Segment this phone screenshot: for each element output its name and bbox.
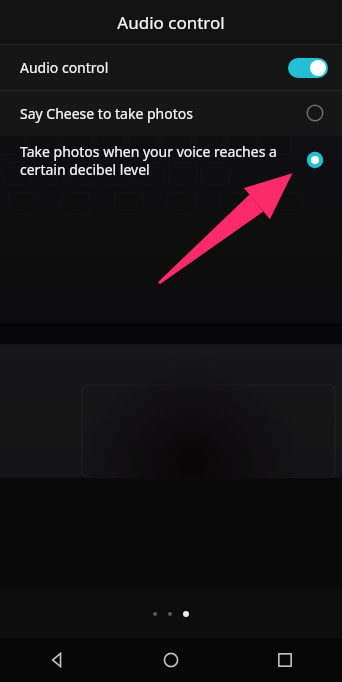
staticText: Take photos when your voice reaches a ce… bbox=[20, 142, 288, 179]
button[interactable]: Recents bbox=[228, 638, 342, 682]
button[interactable]: Say Cheese to take photos bbox=[0, 91, 342, 135]
button[interactable]: Not selected bbox=[302, 100, 328, 126]
staticText: Say Cheese to take photos bbox=[20, 104, 302, 123]
staticText: Audio control bbox=[117, 11, 225, 34]
button[interactable]: Take photos when your voice reaches a ce… bbox=[0, 136, 342, 184]
button[interactable]: Audio control bbox=[0, 45, 342, 90]
button[interactable]: Home bbox=[114, 638, 228, 682]
button[interactable]: Audio control switch, on bbox=[288, 58, 328, 78]
staticText: Audio control bbox=[20, 58, 288, 77]
button[interactable]: Back bbox=[0, 638, 114, 682]
button[interactable]: Selected bbox=[302, 147, 328, 173]
